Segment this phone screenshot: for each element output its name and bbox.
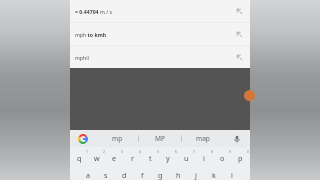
staticText: o [220,153,225,163]
button[interactable]: Voice input [224,130,250,147]
button[interactable]: 8 [195,149,213,166]
button[interactable]: Google [70,130,96,147]
staticText: mphil [75,54,89,61]
button[interactable]: 9 [213,149,231,166]
staticText: u [184,153,189,163]
staticText: j [195,170,197,180]
button[interactable]: s [97,169,115,180]
staticText: r [131,153,134,163]
staticText: q [77,153,82,163]
staticText: k [212,170,216,180]
staticText: 3 [121,149,123,154]
staticText: a [86,170,91,180]
button[interactable]: k [205,169,223,180]
button[interactable]: 5 [141,149,159,166]
staticText: 7 [193,149,195,154]
button[interactable]: mp [96,130,138,147]
button[interactable]: 7 [177,149,195,166]
button[interactable]: g [151,169,169,180]
button[interactable]: 3 [105,149,123,166]
button[interactable]: Accent [244,90,255,101]
staticText: w [94,153,100,163]
button[interactable]: 2 [88,149,105,166]
staticText: g [158,170,163,180]
button[interactable]: map [182,130,224,147]
button[interactable]: Insert suggestion [232,50,246,64]
button[interactable]: 1 [71,149,88,166]
staticText: 6 [175,149,177,154]
staticText: map [196,134,210,143]
button[interactable]: mph to kmh [70,23,250,45]
staticText: 8 [211,149,213,154]
staticText: 0 [247,149,249,154]
staticText: f [141,170,144,180]
button[interactable]: 4 [123,149,141,166]
staticText: 9 [229,149,231,154]
staticText: MP [155,134,165,143]
staticText: y [166,153,170,163]
button[interactable]: h [169,169,187,180]
button[interactable]: l [223,169,241,180]
button[interactable]: mphil [70,46,250,68]
staticText: h [176,170,181,180]
button[interactable]: 0 [231,149,249,166]
button[interactable]: = 0.44704 m / s [70,0,250,22]
staticText: t [149,153,152,163]
staticText: p [238,153,243,163]
staticText: l [231,170,233,180]
staticText: = 0.44704 m / s [75,8,112,15]
button[interactable]: 6 [159,149,177,166]
staticText: 4 [139,149,141,154]
staticText: mph to kmh [75,31,107,38]
button[interactable]: d [115,169,133,180]
staticText: 1 [86,149,88,154]
staticText: s [104,170,108,180]
button[interactable]: f [133,169,151,180]
button[interactable]: Insert suggestion [232,27,246,41]
staticText: i [203,153,205,163]
staticText: 5 [157,149,159,154]
staticText: e [112,153,117,163]
button[interactable]: MP [139,130,181,147]
button[interactable]: Insert suggestion [232,4,246,18]
staticText: d [122,170,127,180]
button[interactable]: j [187,169,205,180]
button[interactable]: a [79,169,97,180]
staticText: 2 [103,149,105,154]
staticText: mp [112,134,123,143]
